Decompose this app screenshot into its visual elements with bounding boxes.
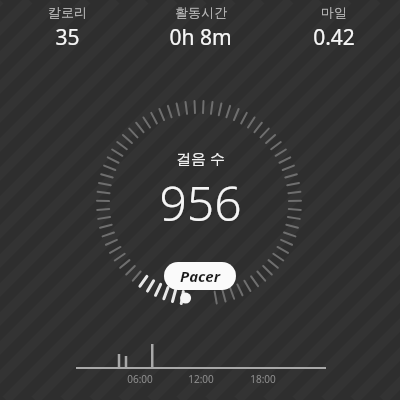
staticText: 35 [55,23,80,52]
staticText: Pacer [180,266,220,286]
staticText: 0h 8m [169,23,232,52]
button[interactable]: Step progress dial [96,100,302,306]
staticText: 956 [159,170,242,235]
staticText: 마일 [321,4,347,20]
button[interactable]: 활동시간 [134,4,267,52]
button[interactable]: 마일 [267,4,400,52]
staticText: 18:00 [233,372,293,386]
staticText: 12:00 [171,372,231,386]
staticText: 걸음 수 [176,148,225,168]
button[interactable]: Daily activity chart [76,338,326,370]
staticText: 칼로리 [48,4,87,20]
staticText: 활동시간 [175,4,227,20]
staticText: 06:00 [110,372,170,386]
staticText: 0.42 [313,23,355,52]
button[interactable]: 칼로리 [0,4,134,52]
button[interactable]: Pacer [164,262,236,290]
